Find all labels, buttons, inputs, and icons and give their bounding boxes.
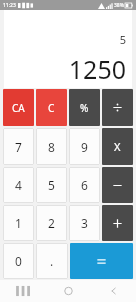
button[interactable]: 8 [36, 128, 67, 165]
button[interactable]: Back [91, 280, 136, 302]
button[interactable]: Recent apps [0, 280, 46, 302]
staticText: % [80, 101, 89, 115]
button[interactable]: 2 [36, 205, 67, 241]
button[interactable]: 3 [69, 205, 100, 241]
button[interactable]: 0 [3, 243, 34, 279]
staticText: . [50, 253, 54, 269]
button[interactable]: Minus [102, 167, 133, 203]
button[interactable]: CA [3, 89, 34, 126]
staticText: 6 [81, 177, 88, 193]
button[interactable]: 5 [36, 167, 67, 203]
staticText: 0 [15, 253, 22, 269]
button[interactable]: Equals [70, 243, 133, 279]
staticText: 9 [81, 139, 88, 155]
button[interactable]: 1 [3, 205, 34, 241]
staticText: 38% [114, 2, 124, 9]
button[interactable]: Plus [102, 205, 133, 241]
staticText: CA [12, 101, 25, 115]
staticText: 5 [48, 177, 55, 193]
button[interactable]: . [36, 243, 68, 279]
button[interactable]: Divide [102, 89, 133, 126]
staticText: 7 [15, 139, 22, 155]
staticText: 2 [48, 215, 55, 231]
button[interactable]: % [69, 89, 100, 126]
button[interactable]: C [36, 89, 67, 126]
button[interactable]: 9 [69, 128, 100, 165]
staticText: 3 [81, 215, 88, 231]
staticText: 1250 [68, 52, 126, 86]
staticText: 11:23 [3, 2, 16, 9]
button[interactable]: X [102, 128, 133, 165]
staticText: 4 [15, 177, 22, 193]
staticText: X [114, 139, 121, 154]
button[interactable]: Home [46, 280, 91, 302]
button[interactable]: 6 [69, 167, 100, 203]
button[interactable]: 4 [3, 167, 34, 203]
button[interactable]: 7 [3, 128, 34, 165]
staticText: 8 [48, 139, 55, 155]
staticText: 1 [15, 215, 22, 231]
staticText: C [48, 101, 55, 115]
staticText: 5 [119, 32, 126, 47]
